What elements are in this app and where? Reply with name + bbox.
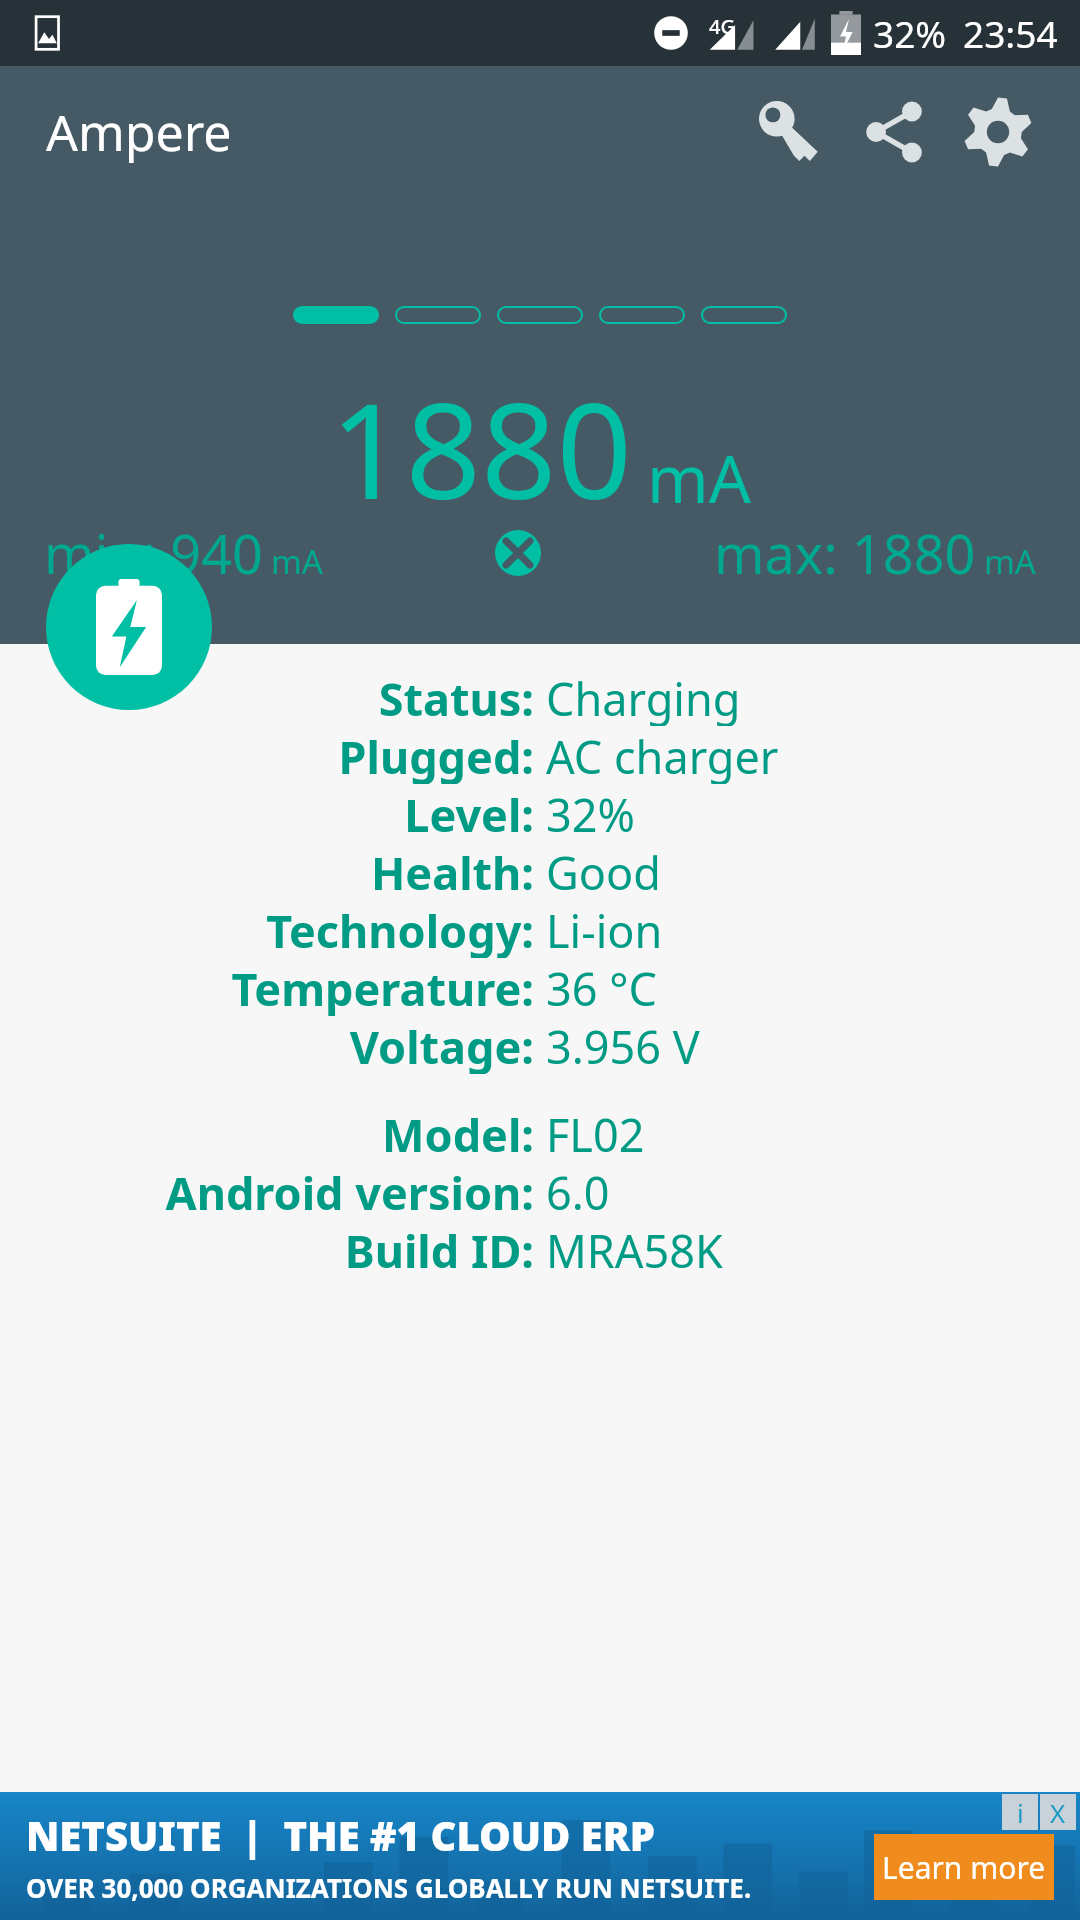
staticText: min: 940 xyxy=(44,516,263,590)
button[interactable]: Reset min and max xyxy=(486,521,550,585)
staticText: 6.0 xyxy=(546,1162,610,1220)
button[interactable]: Share xyxy=(842,80,946,184)
staticText: 32% xyxy=(546,784,635,842)
staticText: Android version: xyxy=(165,1162,534,1220)
staticText: 23:54 xyxy=(963,8,1058,58)
staticText: OVER 30,000 ORGANIZATIONS GLOBALLY RUN N… xyxy=(26,1870,752,1905)
staticText: Plugged: xyxy=(338,726,534,784)
staticText: AC charger xyxy=(546,726,779,784)
staticText: X xyxy=(1050,1795,1066,1830)
staticText: 36 °C xyxy=(546,958,657,1016)
staticText: Technology: xyxy=(266,900,534,958)
button[interactable]: NetSuite advertisement xyxy=(0,1792,1080,1920)
button[interactable]: Ad info xyxy=(1002,1794,1038,1830)
button[interactable]: Settings xyxy=(946,80,1050,184)
staticText: 4G xyxy=(709,13,735,40)
staticText: Learn more xyxy=(882,1847,1046,1888)
staticText: mA xyxy=(647,432,751,522)
staticText: 3.956 V xyxy=(546,1016,700,1074)
button[interactable]: Learn more xyxy=(874,1834,1054,1900)
staticText: Ampere xyxy=(46,98,232,166)
staticText: Model: xyxy=(382,1104,534,1162)
staticText: 1880 xyxy=(330,358,633,538)
staticText: max: 1880 xyxy=(714,516,976,590)
staticText: MRA58K xyxy=(546,1220,723,1278)
staticText: i xyxy=(1017,1795,1024,1830)
staticText: Temperature: xyxy=(231,958,534,1016)
staticText: FL02 xyxy=(546,1104,645,1162)
button[interactable]: Close ad xyxy=(1040,1794,1076,1830)
staticText: Status: xyxy=(378,668,534,726)
staticText: Charging xyxy=(546,668,741,726)
staticText: Build ID: xyxy=(344,1220,534,1278)
button[interactable]: Charging status xyxy=(46,544,212,710)
staticText: Level: xyxy=(404,784,534,842)
staticText: Health: xyxy=(370,842,534,900)
staticText: NETSUITE | THE #1 CLOUD ERP xyxy=(26,1808,656,1862)
staticText: 32% xyxy=(873,8,947,58)
staticText: Good xyxy=(546,842,661,900)
staticText: mA xyxy=(271,539,323,584)
staticText: Voltage: xyxy=(349,1016,534,1074)
staticText: mA xyxy=(984,539,1036,584)
button[interactable]: Unlock pro xyxy=(738,80,842,184)
staticText: Li-ion xyxy=(546,900,663,958)
